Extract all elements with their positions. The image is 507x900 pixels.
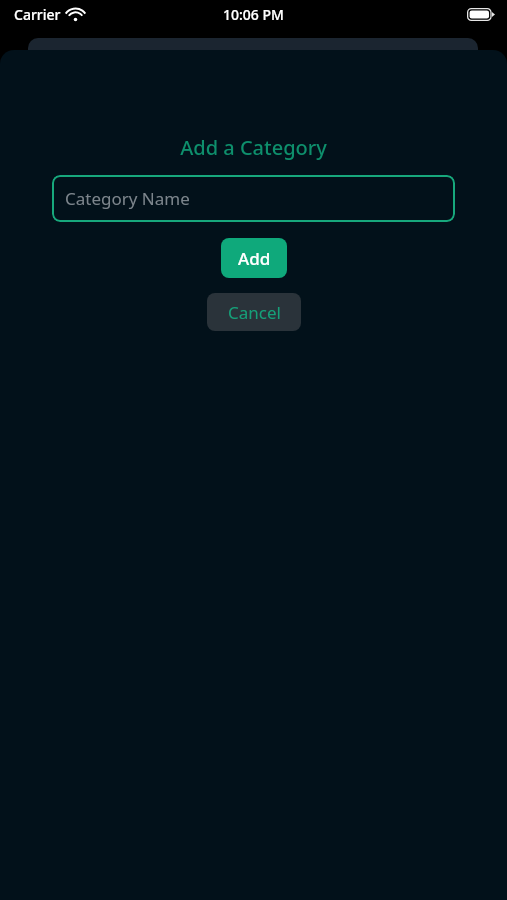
other: Wi-Fi signal	[67, 8, 84, 21]
button[interactable]: Category Name	[52, 175, 455, 222]
button[interactable]: Cancel	[207, 293, 301, 331]
other: Battery full	[467, 8, 495, 21]
staticText: Add a Category	[180, 134, 327, 161]
staticText: Add	[238, 247, 271, 270]
staticText: Category Name	[65, 187, 190, 210]
staticText: 10:06 PM	[223, 5, 284, 24]
staticText: Cancel	[228, 301, 281, 324]
staticText: Carrier	[14, 5, 61, 24]
button[interactable]: Add	[221, 238, 287, 278]
